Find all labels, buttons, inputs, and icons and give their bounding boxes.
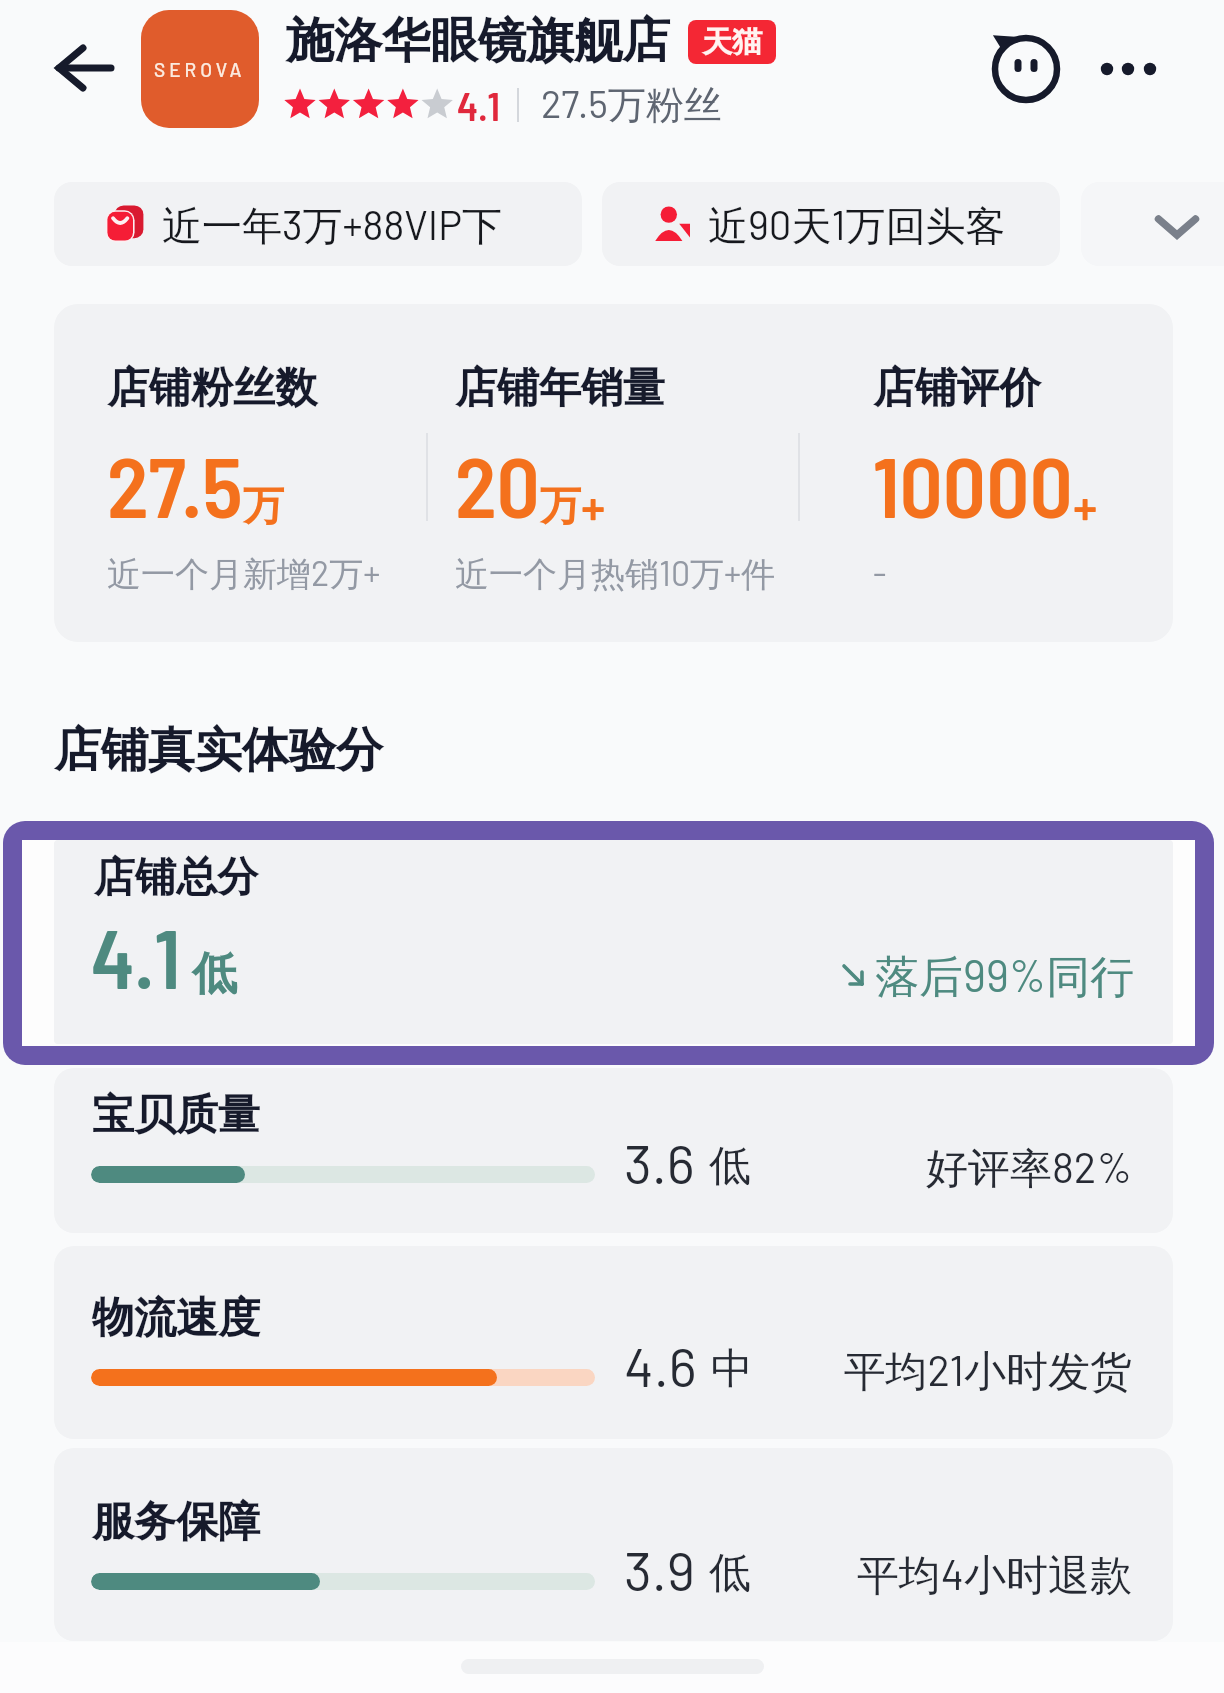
staticText: 低 [709,1547,751,1600]
button[interactable]: Customer service [986,29,1066,109]
button[interactable]: Back [33,28,137,132]
staticText: 20 [455,433,540,535]
staticText: 近一个月热销10万+件 [455,552,776,596]
button[interactable]: 物流速度 [54,1246,1173,1439]
button[interactable]: 店铺粉丝数 [54,304,1173,642]
staticText: 店铺总分 [94,852,258,904]
staticText: 施洛华眼镜旗舰店 [286,11,670,71]
staticText: 万 [540,481,581,533]
staticText: 落后99%同行 [875,948,1135,1005]
staticText: 27.5 [107,433,243,535]
button[interactable]: 宝贝质量 [54,1068,1173,1233]
button[interactable]: SEROVA [141,10,259,128]
staticText: 宝贝质量 [92,1089,260,1142]
staticText: 近90天1万回头客 [708,200,1006,252]
button[interactable]: 近一年3万+88VIP下单 [54,182,582,266]
staticText: 平均21小时发货 [554,1344,1132,1398]
staticText: + [581,474,606,536]
button[interactable]: 近90天1万回头客 [602,182,1060,266]
button[interactable]: 店铺总分 [54,840,1173,1044]
button[interactable]: More options [1075,24,1165,114]
staticText: 中 [711,1343,753,1396]
staticText: 低 [192,946,237,1003]
staticText: 4.6 [624,1333,697,1398]
staticText: 4.1 [457,81,501,129]
staticText: 3.9 [624,1537,695,1602]
staticText: SEROVA [154,58,246,81]
staticText: 店铺评价 [873,362,1041,415]
staticText: 低 [709,1140,751,1193]
staticText: 27.5万粉丝 [541,80,722,129]
staticText: + [1073,474,1098,536]
staticText: - [873,552,887,593]
staticText: 万 [243,481,284,533]
staticText: 近一年3万+88VIP下单 [162,200,536,252]
staticText: 店铺粉丝数 [107,362,317,415]
staticText: 店铺真实体验分 [54,721,383,780]
staticText: 物流速度 [92,1292,260,1345]
staticText: 10000 [873,433,1073,535]
staticText: 好评率82% [554,1141,1132,1195]
staticText: 平均4小时退款 [554,1548,1132,1602]
button[interactable]: 服务保障 [54,1448,1173,1641]
staticText: 4.1 [91,906,181,1006]
staticText: 近一个月新增2万+ [107,552,381,596]
staticText: 服务保障 [92,1496,260,1549]
staticText: 店铺年销量 [455,362,665,415]
staticText: 3.6 [624,1130,695,1195]
staticText: 天猫 [702,23,762,61]
button[interactable]: Expand [1135,184,1219,268]
